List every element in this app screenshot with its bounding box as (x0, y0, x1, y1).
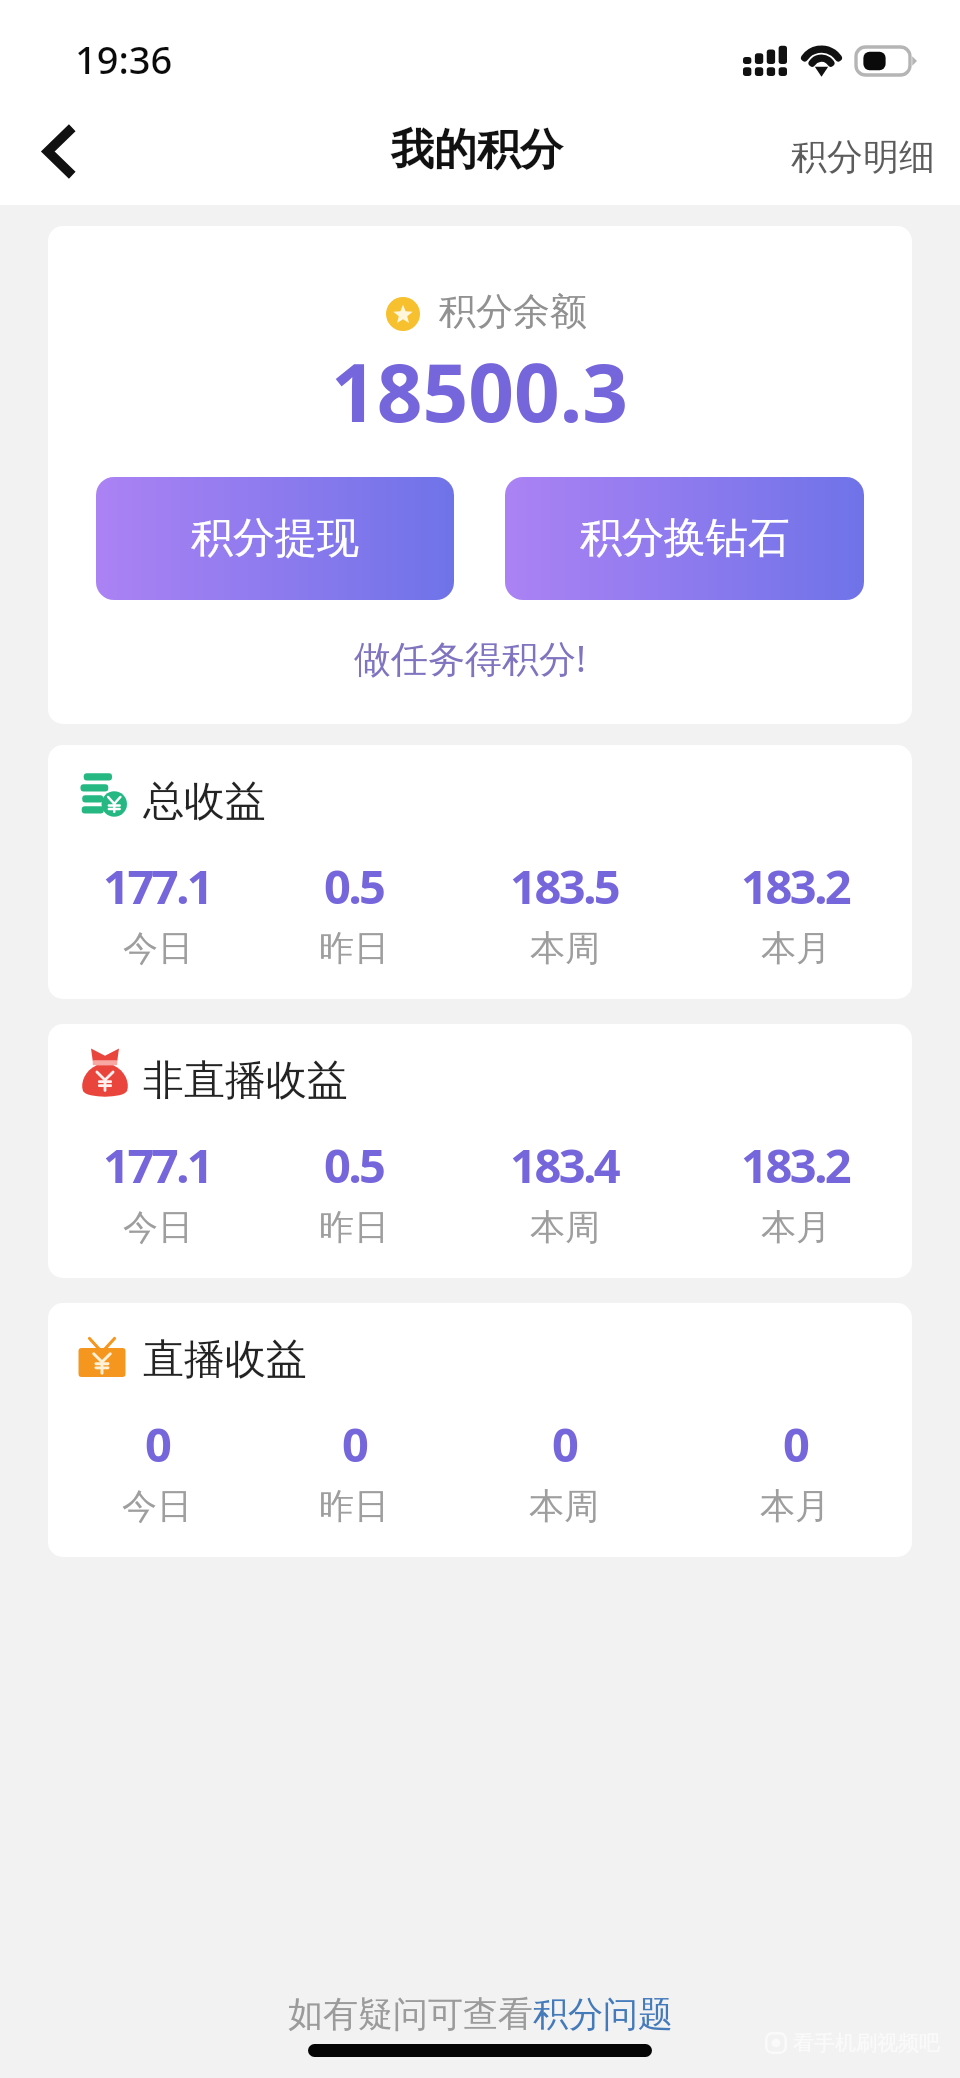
staticText: 直播收益 (143, 1334, 307, 1386)
staticText: 今日 (122, 1484, 192, 1528)
staticText: 如有疑问可查看积分问题 (288, 1992, 673, 2036)
staticText: 0 (342, 1412, 367, 1476)
staticText: 本周 (530, 926, 600, 970)
staticText: 积分余额 (439, 288, 587, 335)
staticText: 今日 (123, 1205, 193, 1249)
staticText: 19:36 (75, 33, 173, 85)
staticText: 昨日 (319, 926, 389, 970)
staticText: 非直播收益 (143, 1055, 348, 1107)
staticText: 本月 (760, 1484, 830, 1528)
staticText: 本月 (761, 926, 831, 970)
staticText: 183.2 (741, 854, 850, 918)
staticText: 183.2 (741, 1133, 850, 1197)
staticText: 0 (552, 1412, 577, 1476)
staticText: 177.1 (103, 1133, 212, 1197)
staticText: 昨日 (319, 1205, 389, 1249)
staticText: 本月 (761, 1205, 831, 1249)
staticText: 积分提现 (191, 512, 359, 565)
staticText: 0 (145, 1412, 170, 1476)
staticText: 做任务得积分! (354, 632, 586, 683)
button[interactable]: 如有疑问可查看积分问题 (272, 1986, 689, 2042)
staticText: 本周 (529, 1484, 599, 1528)
staticText: 183.5 (510, 854, 619, 918)
staticText: 本周 (530, 1205, 600, 1249)
staticText: 183.4 (510, 1133, 619, 1197)
button[interactable]: 积分明细 (764, 120, 960, 193)
staticText: 今日 (123, 926, 193, 970)
button[interactable]: 积分换钻石 (505, 477, 864, 600)
staticText: 177.1 (103, 854, 212, 918)
staticText: 0.5 (324, 1133, 384, 1197)
button[interactable]: 积分提现 (96, 477, 454, 600)
button[interactable]: Back (15, 106, 105, 196)
staticText: 0.5 (324, 854, 384, 918)
staticText: 0 (783, 1412, 808, 1476)
staticText: 18500.3 (331, 336, 629, 445)
staticText: 积分换钻石 (580, 512, 790, 565)
staticText: 总收益 (143, 776, 266, 828)
staticText: 我的积分 (391, 123, 563, 177)
staticText: 看手机刷视频吧 (793, 2030, 940, 2056)
staticText: 昨日 (319, 1484, 389, 1528)
